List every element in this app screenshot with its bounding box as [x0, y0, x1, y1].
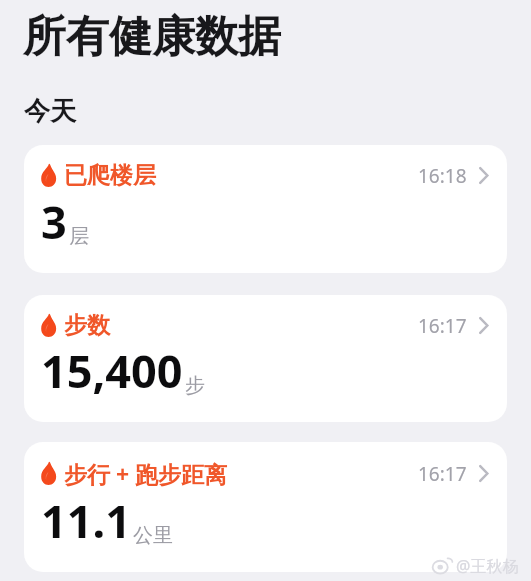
staticText: 层	[69, 224, 89, 249]
staticText: 已爬楼层	[64, 161, 156, 190]
other: 查看步数 详情	[478, 316, 489, 335]
staticText: 公里	[133, 523, 173, 548]
staticText: 16:18	[418, 163, 467, 189]
button[interactable]: 步数	[24, 295, 507, 422]
button[interactable]: 已爬楼层	[24, 145, 507, 273]
staticText: 16:17	[418, 461, 467, 487]
other: 查看已爬楼层 详情	[478, 166, 489, 185]
button[interactable]: 步行 + 跑步距离	[24, 442, 507, 572]
other: 查看步行 + 跑步距离 详情	[478, 464, 489, 483]
staticText: 15,400	[41, 340, 183, 401]
staticText: 步	[185, 373, 205, 398]
staticText: @王秋杨	[456, 555, 519, 577]
staticText: 16:17	[418, 313, 467, 339]
staticText: 所有健康数据	[23, 10, 281, 64]
staticText: 今天	[24, 95, 76, 128]
staticText: 步行 + 跑步距离	[64, 458, 228, 489]
staticText: 步数	[64, 311, 110, 340]
staticText: 11.1	[41, 490, 131, 551]
staticText: 3	[41, 191, 67, 252]
